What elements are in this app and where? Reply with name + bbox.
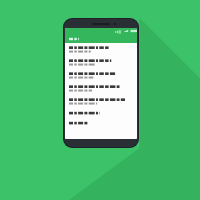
- button[interactable]: List item: [65, 82, 137, 95]
- button[interactable]: List item: [65, 95, 137, 108]
- button[interactable]: List item: [65, 108, 137, 118]
- button[interactable]: List item: [65, 69, 137, 82]
- button[interactable]: List item: [65, 43, 137, 56]
- button[interactable]: List item: [65, 118, 137, 128]
- button[interactable]: [65, 34, 137, 43]
- button[interactable]: List item: [65, 56, 137, 69]
